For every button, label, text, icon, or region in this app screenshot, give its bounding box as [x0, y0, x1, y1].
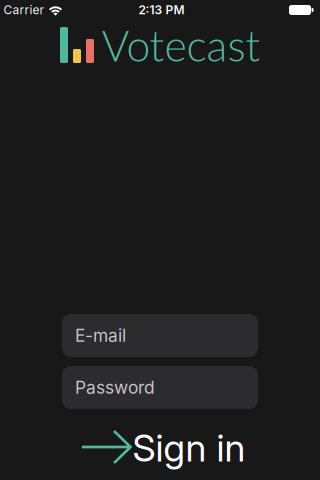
staticText: Carrier: [3, 3, 44, 17]
staticText: Sign in: [132, 425, 245, 471]
staticText: E-mail: [75, 325, 126, 346]
button[interactable]: Sign in: [78, 425, 254, 469]
staticText: 2:13 PM: [138, 3, 184, 17]
staticText: Votecast: [101, 19, 260, 71]
button[interactable]: Password: [62, 366, 258, 409]
staticText: Password: [75, 377, 155, 398]
button[interactable]: E-mail: [62, 314, 258, 357]
